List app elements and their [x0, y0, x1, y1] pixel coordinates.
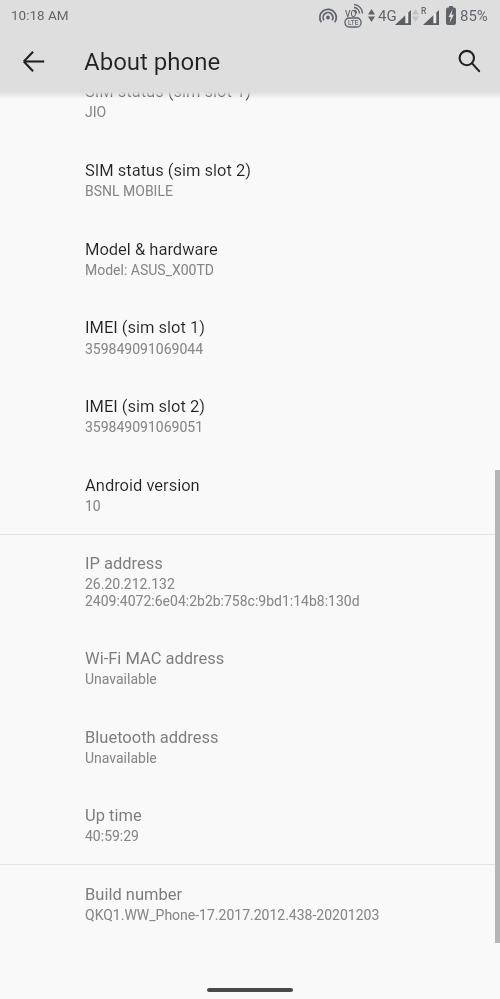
button[interactable]: [0, 149, 500, 211]
staticText: IMEI (sim slot 2): [85, 397, 206, 416]
staticText: About phone: [84, 48, 221, 76]
staticText: Build number: [85, 885, 183, 904]
button[interactable]: [0, 716, 500, 778]
staticText: 2409:4072:6e04:2b2b:758c:9bd1:14b8:130d: [85, 593, 360, 609]
staticText: 40:59:29: [85, 828, 139, 844]
button[interactable]: [0, 873, 500, 935]
staticText: 26.20.212.132: [85, 576, 175, 592]
staticText: SIM status (sim slot 1): [85, 82, 251, 101]
staticText: 4G: [378, 7, 397, 25]
staticText: 10:18 AM: [11, 7, 69, 23]
staticText: 85%: [460, 7, 488, 25]
button[interactable]: [0, 385, 500, 447]
button[interactable]: [0, 794, 500, 856]
staticText: 359849091069044: [85, 341, 204, 357]
staticText: Up time: [85, 806, 142, 825]
staticText: Bluetooth address: [85, 728, 219, 747]
button[interactable]: [0, 70, 500, 132]
staticText: Android version: [85, 476, 200, 495]
staticText: IMEI (sim slot 1): [85, 318, 206, 337]
staticText: BSNL MOBILE: [85, 183, 173, 199]
button[interactable]: [0, 464, 500, 526]
staticText: R: [421, 6, 427, 16]
staticText: QKQ1.WW_Phone-17.2017.2012.438-20201203: [85, 907, 380, 923]
button[interactable]: Back: [9, 37, 57, 85]
button[interactable]: [0, 637, 500, 699]
staticText: Unavailable: [85, 750, 157, 766]
staticText: VO: [345, 9, 357, 19]
staticText: JIO: [85, 104, 107, 120]
staticText: IP address: [85, 554, 163, 573]
staticText: Model & hardware: [85, 240, 218, 259]
button[interactable]: [0, 542, 500, 620]
staticText: Unavailable: [85, 671, 157, 687]
staticText: 10: [85, 498, 101, 514]
staticText: SIM status (sim slot 2): [85, 161, 251, 180]
button[interactable]: [0, 306, 500, 368]
staticText: Wi-Fi MAC address: [85, 649, 225, 668]
staticText: LTE: [348, 19, 359, 27]
button[interactable]: Search: [444, 37, 492, 85]
staticText: Model: ASUS_X00TD: [85, 262, 215, 278]
staticText: 359849091069051: [85, 419, 204, 435]
button[interactable]: [0, 228, 500, 290]
